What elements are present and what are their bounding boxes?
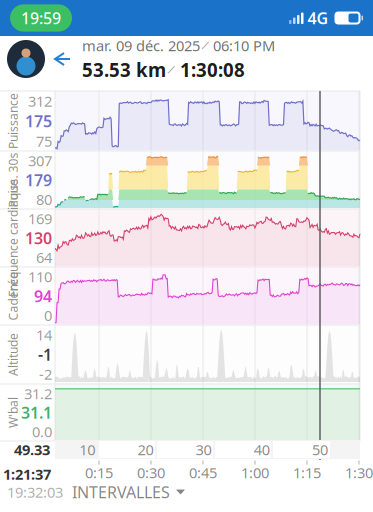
- staticText: mar. 09 déc. 2025: [82, 36, 200, 55]
- staticText: 1:30:08: [180, 57, 245, 82]
- staticText: 0.0: [32, 422, 52, 441]
- staticText: 1:30: [345, 463, 373, 482]
- staticText: 312: [28, 91, 52, 111]
- staticText: W'bal: [0, 404, 28, 420]
- staticText: 179: [25, 169, 52, 191]
- staticText: -1: [38, 344, 52, 365]
- staticText: Altitude: [0, 346, 34, 362]
- staticText: -2: [39, 364, 52, 384]
- staticText: 20: [137, 440, 153, 459]
- staticText: Puiss. 30s: [0, 172, 40, 188]
- staticText: 80: [36, 190, 52, 209]
- staticText: 40: [254, 440, 270, 459]
- staticText: Puissance: [0, 113, 41, 129]
- staticText: 53.53 km: [82, 57, 166, 82]
- staticText: 1:21:37: [3, 464, 51, 484]
- staticText: 19:59: [21, 7, 61, 29]
- staticText: INTERVALLES: [72, 481, 170, 503]
- staticText: 31.2: [24, 384, 52, 403]
- staticText: 1:00: [241, 463, 269, 482]
- staticText: 175: [25, 110, 52, 132]
- button[interactable]: INTERVALLES: [63, 482, 194, 502]
- staticText: 30: [196, 440, 212, 459]
- staticText: Cadence: [0, 288, 37, 304]
- staticText: 169: [28, 209, 52, 228]
- staticText: 110: [28, 267, 52, 286]
- staticText: 64: [36, 248, 52, 267]
- staticText: 49.33: [14, 440, 50, 459]
- staticText: 4G: [307, 7, 328, 29]
- staticText: 31.1: [21, 402, 52, 423]
- staticText: 307: [28, 151, 52, 170]
- staticText: 0: [44, 306, 52, 325]
- staticText: Fréquence cardiaque: [0, 230, 72, 246]
- staticText: 0:15: [85, 463, 113, 482]
- staticText: 14: [36, 325, 52, 345]
- staticText: 0:30: [137, 463, 165, 482]
- staticText: 94: [34, 285, 52, 307]
- staticText: 19:32:03: [7, 482, 63, 502]
- staticText: 0:45: [189, 463, 217, 482]
- staticText: 06:10 PM: [213, 36, 275, 55]
- staticText: 10: [79, 440, 95, 459]
- staticText: 75: [36, 131, 52, 151]
- staticText: 1:15: [293, 463, 321, 482]
- button[interactable]: Back: [46, 39, 78, 79]
- staticText: 50: [312, 440, 328, 459]
- staticText: 130: [25, 227, 52, 249]
